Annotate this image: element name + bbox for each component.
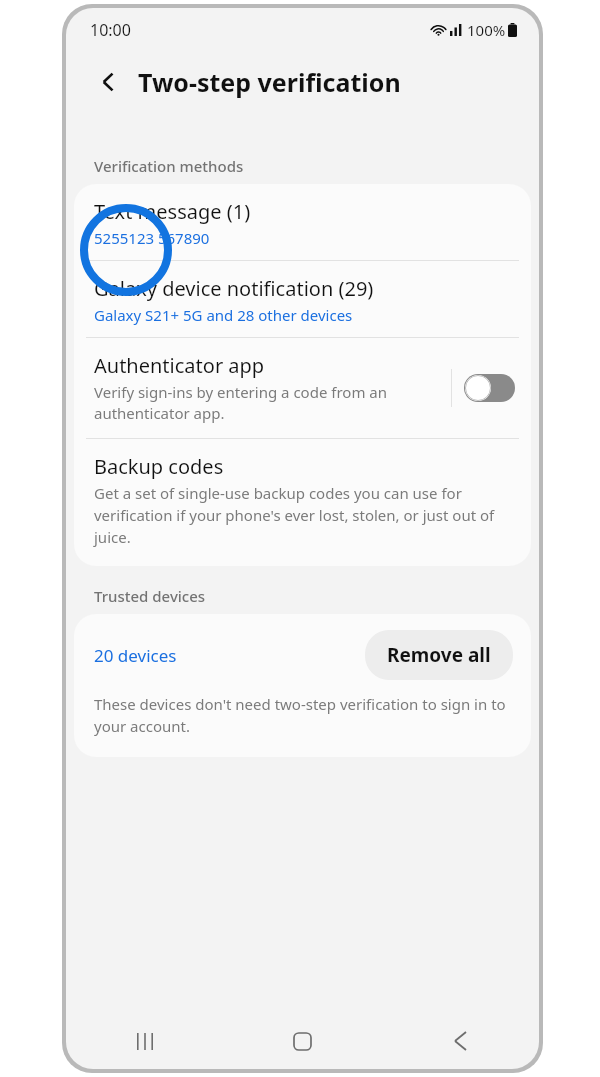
button[interactable]: Text message (1) [74, 184, 531, 260]
staticText: Two-step verification [138, 65, 401, 99]
staticText: 5255123 567890 [94, 228, 210, 248]
staticText: Trusted devices [94, 586, 206, 606]
button[interactable]: Back [381, 1013, 539, 1069]
staticText: Galaxy S21+ 5G and 28 other devices [94, 305, 353, 325]
staticText: 10:00 [90, 19, 131, 41]
staticText: Get a set of single-use backup codes you… [94, 483, 511, 548]
button[interactable]: Remove all [365, 630, 513, 680]
button[interactable]: Authenticator app [74, 338, 531, 438]
staticText: Backup codes [94, 453, 224, 480]
staticText: Authenticator app [94, 352, 265, 379]
staticText: Remove all [387, 642, 491, 668]
staticText: Text message (1) [94, 198, 251, 225]
button[interactable]: Back [88, 61, 130, 103]
button[interactable]: 20 devices [94, 644, 177, 667]
button[interactable]: Backup codes [74, 439, 531, 566]
staticText: These devices don't need two-step verifi… [94, 694, 511, 737]
staticText: Galaxy device notification (29) [94, 275, 374, 302]
button[interactable]: Galaxy device notification (29) [74, 261, 531, 337]
button[interactable]: Recent apps [66, 1013, 223, 1069]
staticText: Verify sign-ins by entering a code from … [94, 382, 441, 424]
staticText: Verification methods [94, 156, 244, 176]
button[interactable]: Home [223, 1013, 381, 1069]
staticText: 100% [467, 20, 506, 40]
button[interactable]: Authenticator app toggle [464, 374, 515, 402]
